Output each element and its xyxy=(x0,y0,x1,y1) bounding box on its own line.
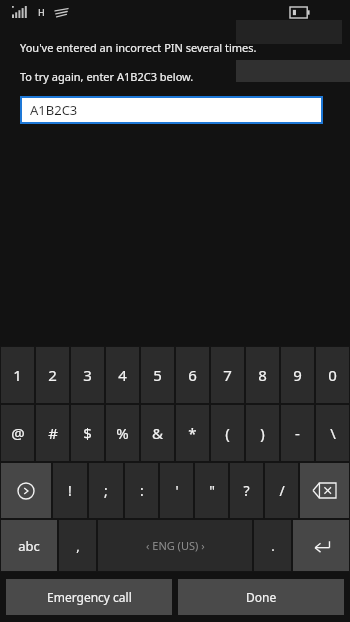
button[interactable]: 3 xyxy=(71,347,104,403)
button[interactable]: - xyxy=(281,405,314,461)
staticText: ( xyxy=(225,423,230,443)
staticText: To try again, enter A1B2C3 below. xyxy=(20,69,194,84)
button[interactable]: 2 xyxy=(36,347,69,403)
staticText: 0 xyxy=(328,365,337,385)
button[interactable]: $ xyxy=(71,405,104,461)
staticText: 3 xyxy=(83,365,92,385)
staticText: You've entered an incorrect PIN several … xyxy=(20,40,257,55)
button[interactable]: % xyxy=(106,405,139,461)
staticText: 1 xyxy=(13,365,22,385)
staticText: ) xyxy=(260,423,265,443)
staticText: $ xyxy=(83,423,92,443)
staticText: ‹ ENG (US) › xyxy=(146,538,205,553)
button[interactable]: ? xyxy=(230,463,263,518)
staticText: Done xyxy=(246,589,277,605)
button[interactable]: , xyxy=(59,520,96,571)
staticText: , xyxy=(76,537,80,555)
staticText: * xyxy=(188,423,197,443)
button[interactable]: Enter xyxy=(293,520,349,571)
staticText: . xyxy=(271,537,275,555)
button[interactable]: ' xyxy=(160,463,193,518)
button[interactable]: Emergency call xyxy=(6,579,172,615)
staticText: 8 xyxy=(258,365,267,385)
button[interactable]: @ xyxy=(1,405,34,461)
button[interactable]: / xyxy=(265,463,298,518)
staticText: 9 xyxy=(293,365,302,385)
staticText: % xyxy=(116,423,129,443)
button[interactable]: 5 xyxy=(141,347,174,403)
staticText: 6 xyxy=(188,365,197,385)
button[interactable]: . xyxy=(254,520,291,571)
button[interactable]: : xyxy=(125,463,158,518)
button[interactable]: More symbols xyxy=(1,463,51,518)
staticText: H xyxy=(38,6,45,18)
button[interactable]: 7 xyxy=(211,347,244,403)
button[interactable]: 4 xyxy=(106,347,139,403)
staticText: \ xyxy=(330,423,336,443)
staticText: @ xyxy=(11,423,25,443)
button[interactable]: \ xyxy=(316,405,349,461)
button[interactable]: 6 xyxy=(176,347,209,403)
button[interactable]: ‹ ENG (US) › xyxy=(98,520,252,571)
button[interactable]: " xyxy=(195,463,228,518)
staticText: Emergency call xyxy=(47,589,132,605)
button[interactable]: 1 xyxy=(1,347,34,403)
staticText: # xyxy=(48,423,58,443)
button[interactable]: 0 xyxy=(316,347,349,403)
staticText: ? xyxy=(243,481,250,500)
staticText: ; xyxy=(104,481,108,500)
button[interactable]: ) xyxy=(246,405,279,461)
button[interactable]: 8 xyxy=(246,347,279,403)
button[interactable]: & xyxy=(141,405,174,461)
staticText: " xyxy=(209,481,215,500)
staticText: 4 xyxy=(118,365,127,385)
staticText: 5 xyxy=(153,365,162,385)
button[interactable]: A1B2C3 xyxy=(20,96,323,124)
button[interactable]: ; xyxy=(89,463,123,518)
button[interactable]: 9 xyxy=(281,347,314,403)
button[interactable]: Backspace xyxy=(300,463,349,518)
staticText: abc xyxy=(18,537,40,555)
staticText: - xyxy=(295,423,300,443)
button[interactable]: * xyxy=(176,405,209,461)
staticText: 7 xyxy=(223,365,232,385)
staticText: ' xyxy=(175,481,179,500)
button[interactable]: # xyxy=(36,405,69,461)
staticText: ! xyxy=(68,481,72,500)
button[interactable]: ! xyxy=(53,463,87,518)
staticText: : xyxy=(140,481,144,500)
button[interactable]: abc xyxy=(1,520,57,571)
button[interactable]: ( xyxy=(211,405,244,461)
staticText: / xyxy=(279,481,285,500)
staticText: 2 xyxy=(48,365,57,385)
staticText: A1B2C3 xyxy=(30,101,78,119)
button[interactable]: Done xyxy=(178,579,344,615)
staticText: & xyxy=(152,423,163,443)
